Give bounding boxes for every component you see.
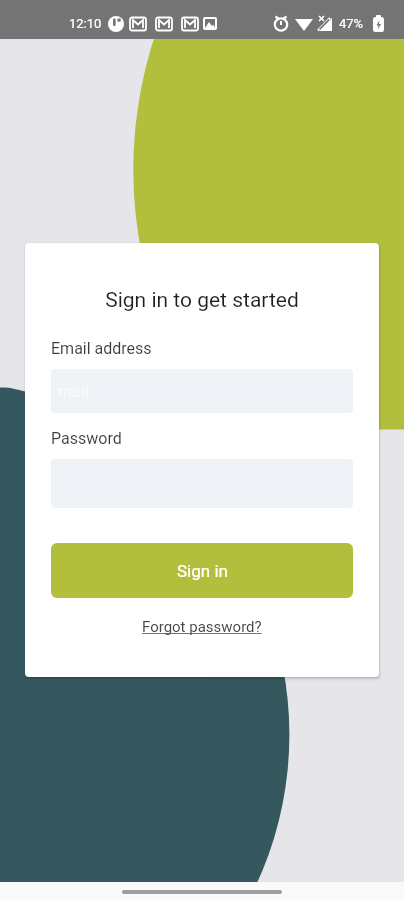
staticText: Sign in: [177, 561, 228, 581]
button[interactable]: Sign in: [51, 543, 353, 598]
button[interactable]: Forgot password?: [142, 618, 262, 636]
staticText: Email address: [51, 339, 152, 358]
staticText: Sign in to get started: [51, 288, 353, 313]
staticText: 12:10: [69, 16, 102, 31]
staticText: Password: [51, 429, 122, 448]
staticText: mail: [58, 382, 89, 401]
staticText: 47%: [339, 16, 364, 31]
